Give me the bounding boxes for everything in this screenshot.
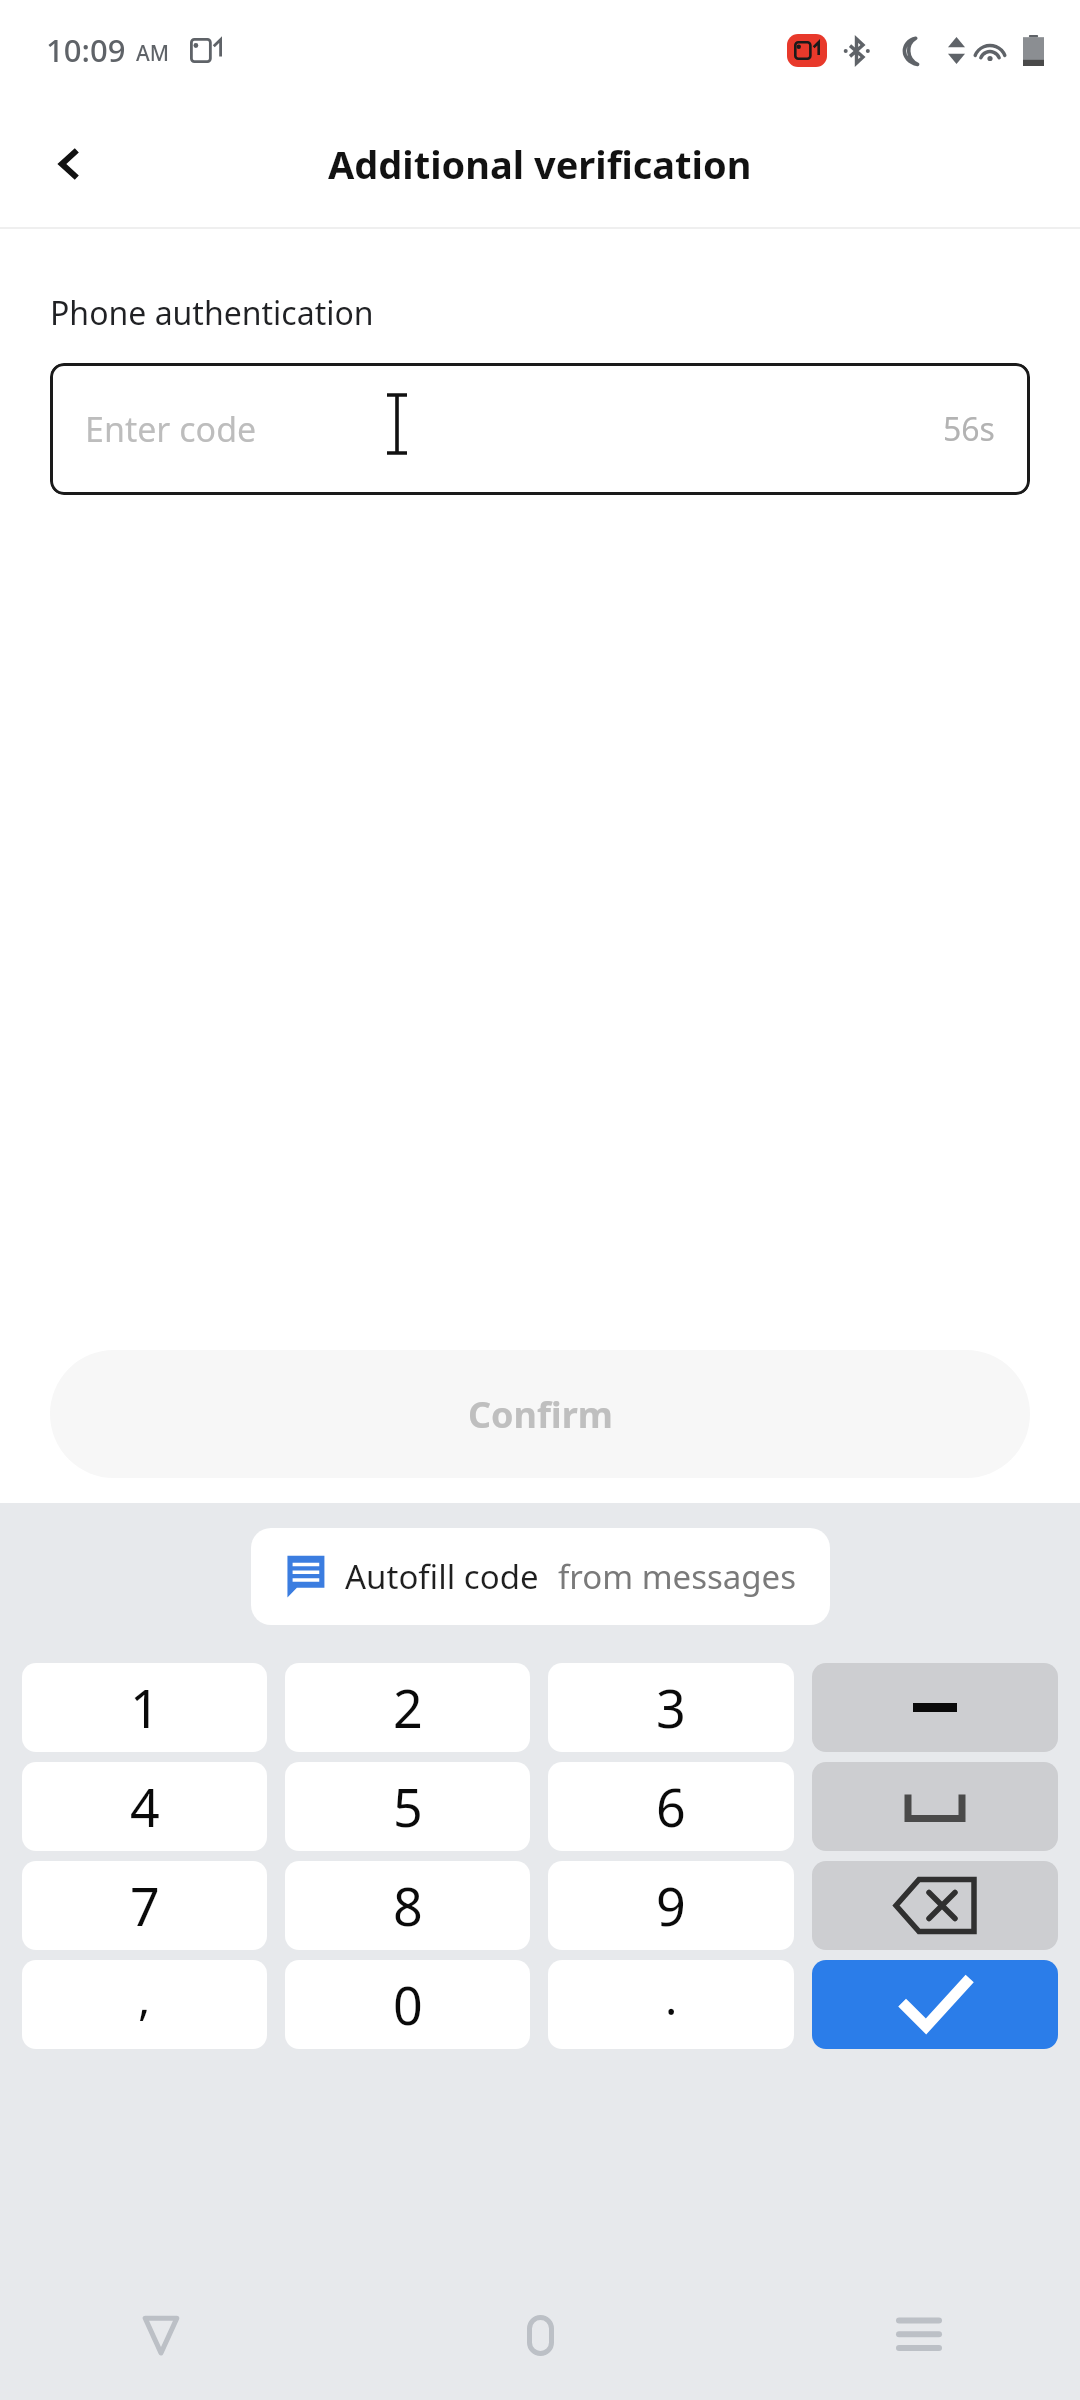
button[interactable]: 5 [285,1762,530,1851]
button[interactable]: 9 [548,1861,794,1950]
staticText: 2 [393,1672,423,1743]
button[interactable]: Space [812,1762,1058,1851]
button[interactable]: Minus [812,1663,1058,1752]
staticText: 6 [656,1771,686,1842]
button[interactable]: 6 [548,1762,794,1851]
staticText: Enter code [85,406,257,452]
staticText: Phone authentication [50,291,374,335]
button[interactable]: Home [494,2289,586,2381]
staticText: 7 [130,1870,160,1941]
staticText: from messages [558,1554,797,1599]
staticText: 8 [393,1870,423,1941]
staticText: , [138,1966,151,2029]
button[interactable]: 1 [22,1663,267,1752]
button[interactable]: 0 [285,1960,530,2049]
button[interactable]: Confirm [50,1350,1030,1478]
staticText: Autofill code [345,1554,539,1599]
button[interactable]: 4 [22,1762,267,1851]
button[interactable]: Back [115,2289,207,2381]
button[interactable]: Recents [873,2289,965,2381]
staticText: AM [136,39,170,68]
button[interactable]: Back [28,122,112,206]
staticText: 56s [943,407,995,451]
button[interactable]: , [22,1960,267,2049]
staticText: . [665,1966,678,2029]
button[interactable]: 2 [285,1663,530,1752]
staticText: 5 [393,1771,423,1842]
staticText: 10:09 [46,29,126,71]
button[interactable]: Autofill code [251,1528,830,1625]
button[interactable]: 3 [548,1663,794,1752]
staticText: 1 [130,1672,160,1743]
staticText: 9 [656,1870,686,1941]
button[interactable]: . [548,1960,794,2049]
button[interactable]: 7 [22,1861,267,1950]
staticText: Additional verification [328,138,752,190]
button[interactable]: Backspace [812,1861,1058,1950]
button[interactable]: Enter code [50,363,1030,495]
staticText: 3 [656,1672,686,1743]
staticText: Confirm [468,1390,613,1439]
button[interactable]: 8 [285,1861,530,1950]
button[interactable]: Enter [812,1960,1058,2049]
staticText: 0 [393,1969,423,2040]
staticText: 4 [130,1771,160,1842]
